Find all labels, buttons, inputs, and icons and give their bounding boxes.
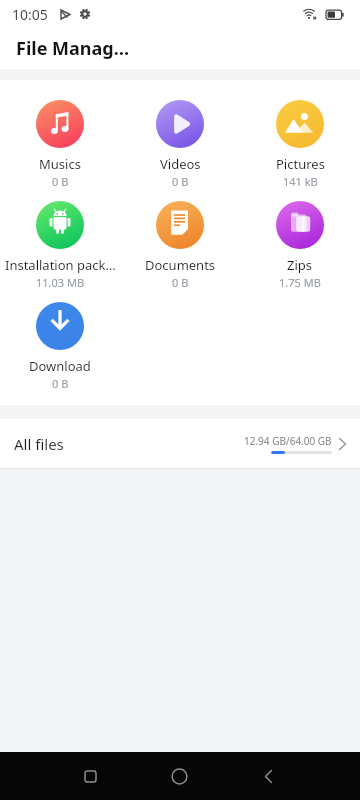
- staticText: 0 B: [52, 174, 69, 189]
- staticText: File Manag…: [16, 36, 130, 61]
- staticText: 1.75 MB: [279, 275, 321, 290]
- staticText: 10:05: [12, 5, 48, 24]
- button[interactable]: Installation pack…: [0, 201, 120, 290]
- staticText: 0 B: [52, 376, 69, 391]
- button[interactable]: Videos: [120, 100, 240, 189]
- staticText: Zips: [287, 256, 313, 274]
- button[interactable]: Musics: [0, 100, 120, 189]
- staticText: All files: [14, 434, 64, 454]
- staticText: Musics: [39, 155, 81, 173]
- button[interactable]: Pictures: [240, 100, 360, 189]
- staticText: 12.94 GB/64.00 GB: [244, 434, 332, 448]
- staticText: Pictures: [276, 155, 325, 173]
- staticText: Videos: [160, 155, 201, 173]
- button[interactable]: Zips: [240, 201, 360, 290]
- button[interactable]: [78, 764, 102, 788]
- staticText: 11.03 MB: [36, 275, 85, 290]
- staticText: Installation pack…: [5, 256, 116, 274]
- staticText: 0 B: [172, 275, 189, 290]
- staticText: Documents: [145, 256, 216, 274]
- button[interactable]: [167, 764, 191, 788]
- button[interactable]: [256, 764, 280, 788]
- staticText: 0 B: [172, 174, 189, 189]
- button[interactable]: Documents: [120, 201, 240, 290]
- button[interactable]: All files: [0, 419, 360, 468]
- button[interactable]: Download: [0, 302, 120, 391]
- staticText: Download: [29, 357, 91, 375]
- staticText: 141 kB: [283, 174, 318, 189]
